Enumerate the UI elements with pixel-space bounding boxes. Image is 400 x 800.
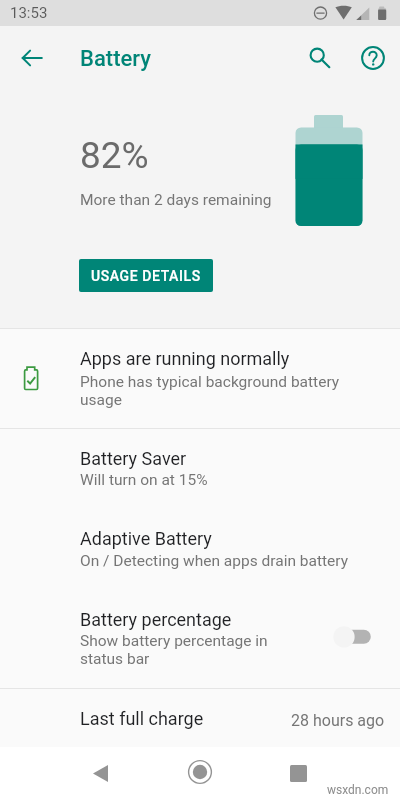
staticText: Battery Saver — [80, 448, 187, 469]
staticText: USAGE DETAILS — [91, 268, 201, 284]
staticText: 82% — [80, 134, 149, 177]
staticText: wsxdn.com — [327, 783, 389, 797]
staticText: Battery percentage — [80, 609, 232, 630]
button[interactable]: Adaptive Battery — [0, 509, 400, 589]
staticText: Battery — [80, 46, 151, 72]
staticText: Show battery percentage in status bar — [80, 632, 276, 668]
staticText: More than 2 days remaining — [80, 191, 272, 209]
staticText: Will turn on at 15% — [80, 471, 208, 489]
button[interactable]: Battery percentage — [328, 617, 380, 649]
button[interactable]: Help — [353, 38, 393, 78]
staticText: Apps are running normally — [80, 348, 290, 369]
staticText: 13:53 — [10, 4, 48, 22]
button[interactable]: Search — [298, 38, 338, 78]
button[interactable]: Apps are running normally — [0, 329, 400, 428]
button[interactable]: Battery Saver — [0, 429, 400, 509]
staticText: Phone has typical background battery usa… — [80, 373, 348, 409]
staticText: 28 hours ago — [291, 711, 385, 730]
staticText: On / Detecting when apps drain battery — [80, 552, 349, 570]
button[interactable]: Back — [78, 751, 122, 795]
button[interactable]: Battery percentage — [0, 589, 400, 688]
button[interactable]: Home — [178, 750, 222, 794]
button[interactable]: Recent apps — [276, 751, 320, 795]
staticText: Adaptive Battery — [80, 528, 212, 549]
button[interactable]: Last full charge — [0, 689, 400, 747]
button[interactable]: Navigate up — [12, 38, 52, 78]
button[interactable]: USAGE DETAILS — [79, 259, 213, 292]
staticText: Last full charge — [80, 708, 204, 729]
